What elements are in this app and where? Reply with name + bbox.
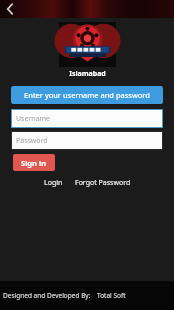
staticText: Total Soft: [97, 291, 126, 300]
button[interactable]: Sign in: [13, 154, 55, 171]
staticText: Username: [16, 114, 51, 124]
staticText: Sign in: [21, 158, 47, 168]
staticText: Enter your username and password: [24, 90, 150, 100]
button[interactable]: Password: [12, 132, 162, 149]
staticText: Designed and Developed By:: [3, 291, 91, 300]
button[interactable]: Username: [12, 110, 162, 127]
button[interactable]: Login: [41, 176, 66, 190]
staticText: Forgot Password: [75, 178, 131, 188]
staticText: Login: [44, 178, 63, 188]
button[interactable]: Enter your username and password: [11, 86, 163, 104]
staticText: Password: [16, 136, 48, 146]
button[interactable]: Back: [0, 0, 20, 18]
staticText: Islamabad: [69, 69, 106, 79]
button[interactable]: Forgot Password: [72, 176, 134, 190]
